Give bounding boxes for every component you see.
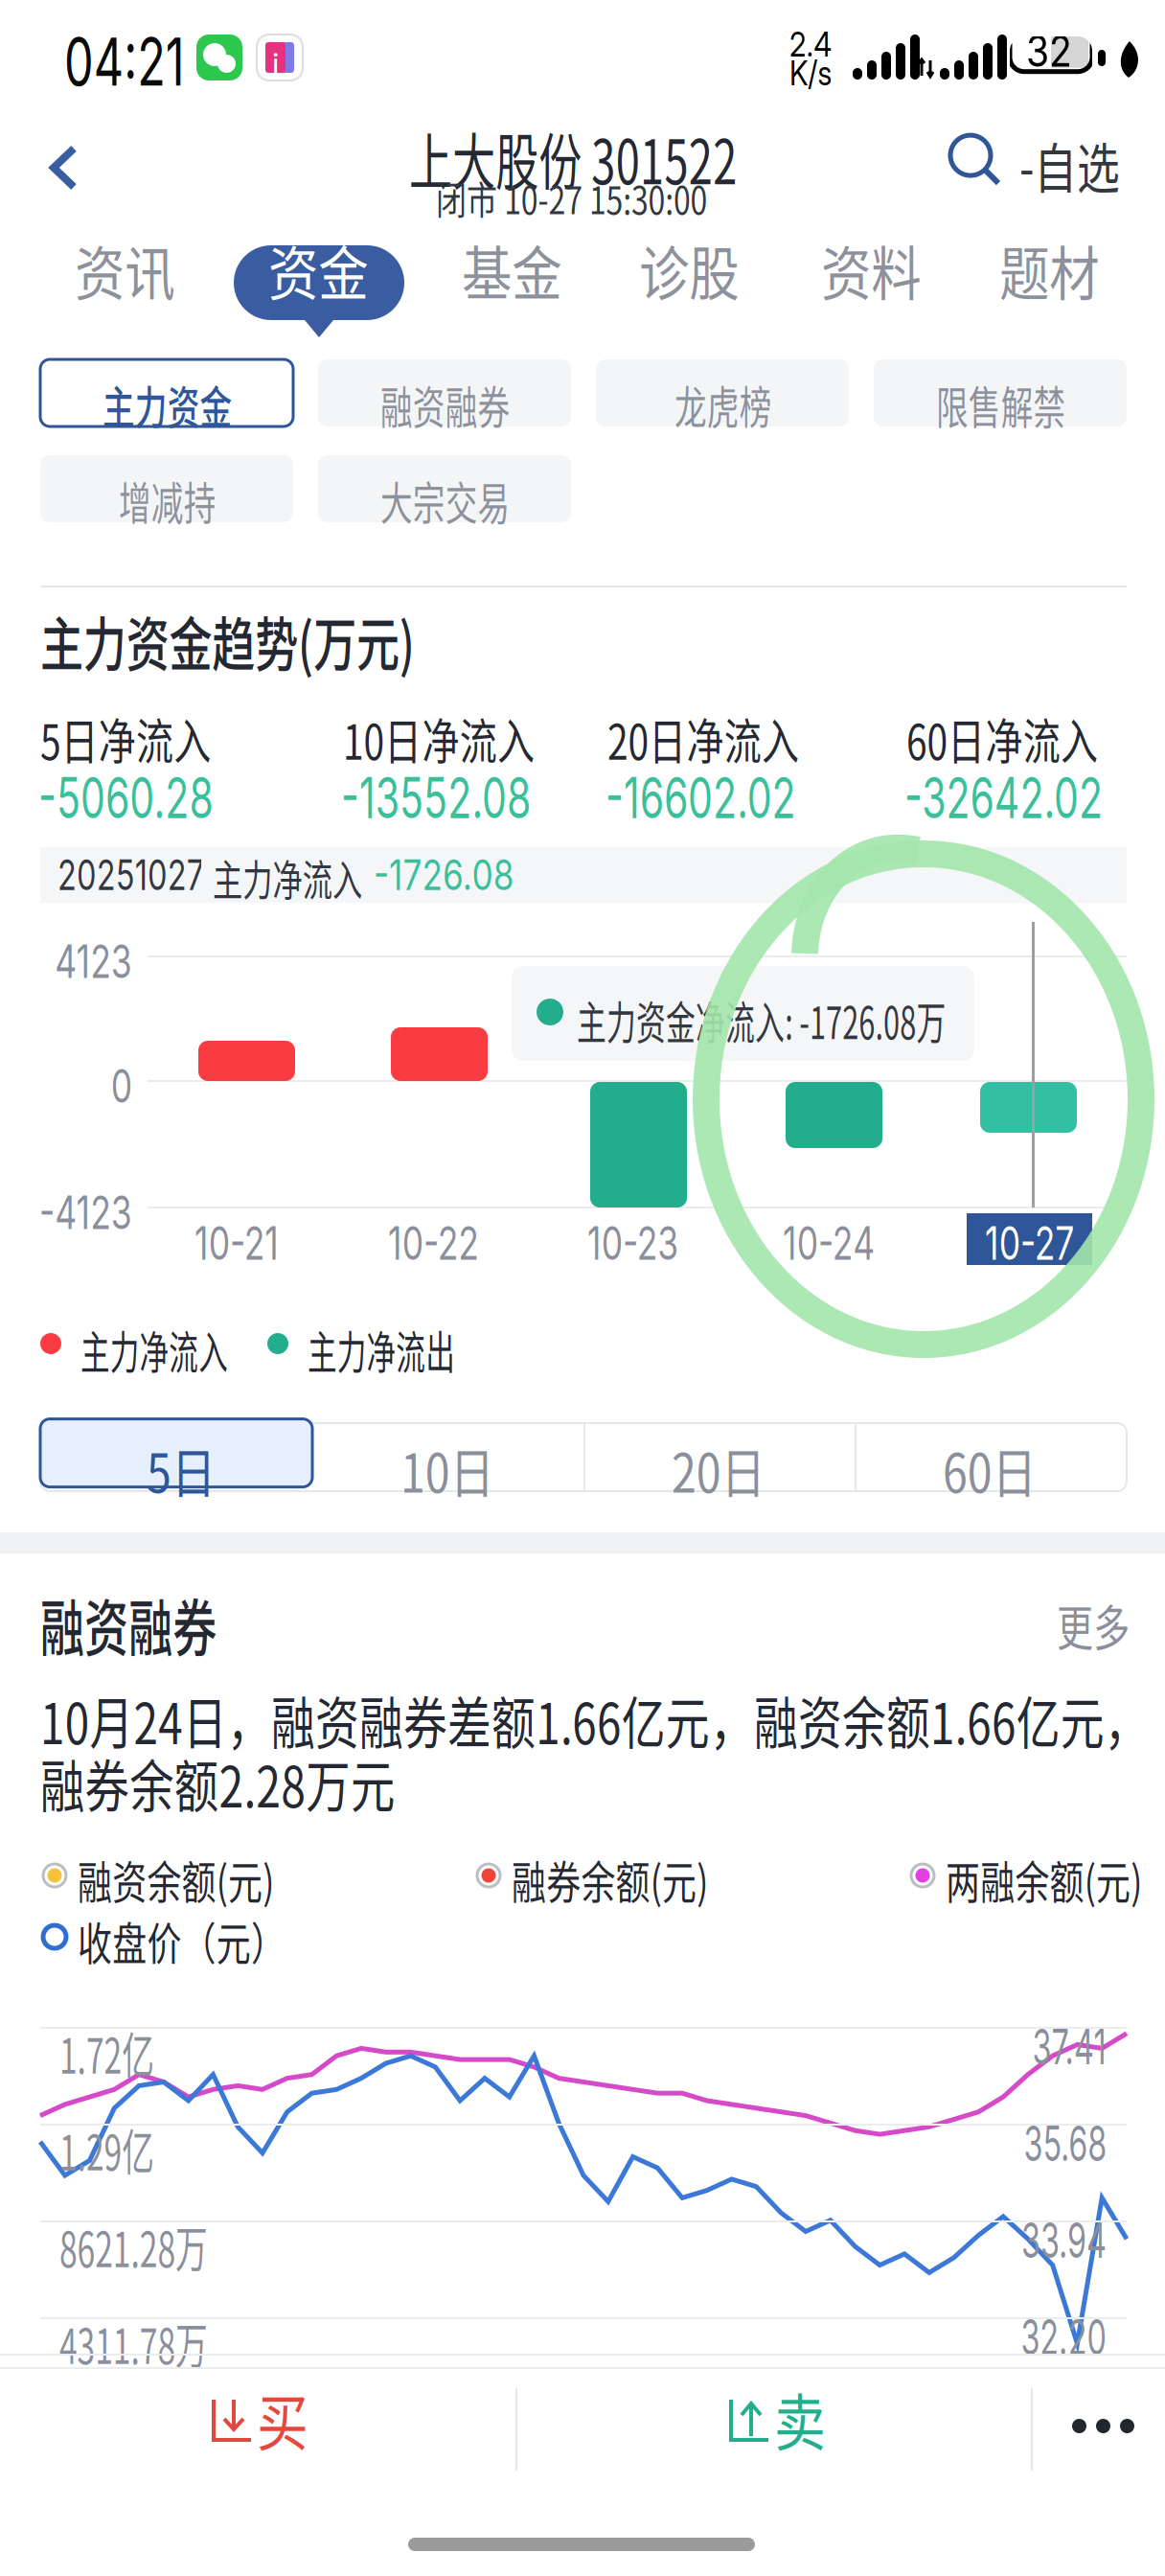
button[interactable]: 龙虎榜: [596, 359, 849, 426]
staticText: 增减持: [119, 468, 254, 532]
staticText: K/s: [789, 52, 840, 94]
staticText: 60日: [943, 1430, 1056, 1508]
button[interactable]: 限售解禁: [874, 359, 1127, 426]
staticText: 5日净流入: [40, 703, 263, 774]
staticText: 融资融券: [380, 372, 560, 437]
staticText: -13552.08: [341, 764, 612, 832]
button[interactable]: 买: [0, 2369, 515, 2482]
button[interactable]: 大宗交易: [318, 455, 571, 522]
button[interactable]: 20日: [583, 1423, 856, 1491]
staticText: 融资融券: [40, 1579, 286, 1668]
staticText: 2.4: [789, 23, 840, 65]
staticText: 1.72亿: [59, 2017, 202, 2088]
staticText: -32642.02: [904, 764, 1165, 832]
staticText: 20日: [672, 1430, 785, 1508]
staticText: 大宗交易: [380, 468, 560, 532]
button[interactable]: 基金: [427, 227, 596, 319]
staticText: 卖: [774, 2374, 835, 2463]
staticText: 基金: [462, 227, 579, 312]
staticText: 上大股份 301522: [409, 113, 875, 202]
staticText: -5060.28: [38, 764, 288, 832]
staticText: 资料: [821, 227, 938, 312]
button[interactable]: 诊股: [605, 227, 773, 319]
staticText: 10日: [400, 1430, 514, 1508]
staticText: 主力资金趋势(万元): [40, 598, 550, 683]
staticText: 32.20: [972, 2308, 1107, 2366]
staticText: 更多: [1057, 1590, 1154, 1660]
staticText: 主力资金: [103, 372, 283, 437]
staticText: 10-27: [985, 1215, 1106, 1271]
button[interactable]: 更多: [1021, 1576, 1127, 1647]
staticText: 题材: [999, 227, 1116, 312]
staticText: 主力净流出: [308, 1317, 533, 1382]
staticText: 限售解禁: [936, 372, 1116, 437]
staticText: 37.41: [991, 2017, 1107, 2076]
staticText: 33.94: [973, 2211, 1107, 2270]
button[interactable]: 增减持: [40, 455, 293, 522]
button[interactable]: Back: [25, 128, 105, 211]
staticText: -1726.08: [374, 849, 549, 900]
staticText: -自选: [1019, 126, 1145, 203]
staticText: -16602.02: [605, 764, 878, 832]
button[interactable]: -自选: [948, 136, 1127, 199]
staticText: 闭市 10-27 15:30:00: [436, 170, 775, 225]
staticText: 主力资金净流入: -1726.08万: [577, 987, 1136, 1052]
staticText: 4311.78万: [59, 2308, 283, 2378]
staticText: 4123: [28, 933, 132, 989]
staticText: 两融余额(元): [946, 1847, 1165, 1911]
button[interactable]: 资金: [234, 227, 402, 319]
staticText: 资讯: [75, 227, 192, 312]
staticText: 主力净流入: [213, 847, 423, 908]
staticText: 10日净流入: [343, 703, 592, 774]
staticText: 1.29亿: [59, 2114, 202, 2184]
staticText: 收盘价（元）: [78, 1908, 348, 1973]
staticText: 买: [257, 2374, 318, 2463]
staticText: 60日净流入: [906, 703, 1155, 774]
button[interactable]: 10日: [312, 1423, 584, 1491]
staticText: 诊股: [639, 227, 756, 312]
staticText: 10月24日，融资融券差额1.66亿元，融资余额1.66亿元，: [40, 1679, 1165, 1760]
staticText: -4123: [7, 1184, 132, 1240]
staticText: 35.68: [977, 2114, 1107, 2173]
button[interactable]: 主力资金: [40, 359, 293, 426]
staticText: 20251027: [57, 849, 256, 900]
button[interactable]: 题材: [965, 227, 1133, 319]
staticText: 8621.28万: [59, 2211, 283, 2281]
staticText: 0: [103, 1058, 132, 1114]
staticText: 5日: [147, 1430, 230, 1508]
staticText: 04:21: [64, 21, 236, 101]
staticText: 融券余额(元): [512, 1847, 767, 1911]
staticText: 10-22: [388, 1215, 511, 1271]
button[interactable]: 卖: [517, 2369, 1031, 2482]
staticText: 融券余额2.28万元: [40, 1742, 490, 1824]
button[interactable]: 融资融券: [318, 359, 571, 426]
staticText: 主力净流入: [80, 1317, 306, 1382]
staticText: 资金: [268, 227, 385, 312]
button[interactable]: More: [1033, 2369, 1165, 2482]
staticText: 龙虎榜: [674, 372, 810, 437]
button[interactable]: 5日: [40, 1423, 312, 1491]
staticText: 32: [1026, 25, 1080, 77]
staticText: 融资余额(元): [78, 1847, 333, 1911]
button[interactable]: 资讯: [40, 227, 209, 319]
button[interactable]: 资料: [787, 227, 955, 319]
staticText: 10-23: [587, 1215, 711, 1271]
staticText: 20日净流入: [607, 703, 857, 774]
staticText: i: [272, 45, 279, 84]
staticText: 10-21: [194, 1215, 308, 1271]
button[interactable]: 60日: [855, 1423, 1127, 1491]
staticText: 10-24: [783, 1215, 907, 1271]
